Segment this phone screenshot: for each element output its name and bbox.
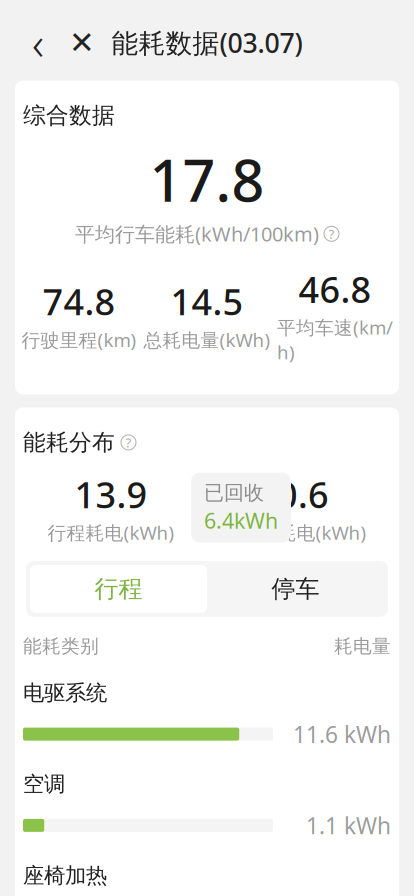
staticText: 能耗数据(03.07) [111, 25, 302, 60]
staticText: 综合数据 [23, 101, 115, 129]
button[interactable]: 停车 [207, 565, 384, 613]
staticText: 46.8 [298, 265, 371, 313]
staticText: 0.6 [277, 470, 329, 518]
staticText: 座椅加热 [23, 862, 107, 889]
staticText: 耗电量 [334, 635, 391, 658]
button[interactable]: Back [16, 20, 60, 64]
staticText: 已回收 [204, 481, 264, 505]
staticText: 17.8 [149, 141, 264, 217]
button[interactable]: Close [60, 20, 104, 64]
staticText: 空调 [23, 771, 65, 797]
staticText: 电驱系统 [23, 680, 107, 706]
staticText: 14.5 [170, 277, 243, 325]
staticText: 1.1 kWh [306, 810, 391, 840]
staticText: ? [125, 433, 131, 451]
staticText: ✕ [69, 25, 95, 60]
staticText: 13.9 [74, 470, 147, 518]
staticText: 能耗分布 [23, 428, 115, 456]
staticText: ? [328, 225, 334, 243]
staticText: ‹ [32, 12, 44, 73]
staticText: 平均车速(km/h) [277, 315, 393, 364]
staticText: 平均行车能耗(kWh/100km) [75, 220, 319, 247]
staticText: 74.8 [42, 277, 115, 325]
staticText: 行程耗电(kWh) [47, 520, 174, 545]
staticText: 停车耗电(kWh) [239, 520, 366, 545]
staticText: 6.4kWh [204, 506, 278, 534]
staticText: 总耗电量(kWh) [143, 327, 270, 352]
staticText: 11.6 kWh [293, 719, 391, 749]
staticText: 停车 [271, 574, 319, 604]
staticText: 行驶里程(km) [21, 327, 136, 352]
button[interactable]: 行程 [30, 565, 207, 613]
staticText: 行程 [94, 574, 142, 604]
staticText: 能耗类别 [23, 635, 99, 658]
